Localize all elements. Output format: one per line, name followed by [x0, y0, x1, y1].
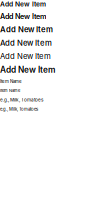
- staticText: Item Name: [0, 79, 22, 84]
- staticText: e.g., Milk, Tomatoes: [0, 97, 43, 103]
- staticText: e.g., Milk, Tomatoes: [0, 107, 38, 112]
- staticText: Add New Item: [0, 38, 52, 47]
- staticText: Add New Item: [0, 25, 53, 34]
- staticText: Add New Item: [0, 12, 46, 21]
- staticText: Add New Item: [0, 51, 51, 61]
- staticText: Add New Item: [0, 65, 55, 75]
- staticText: Add New Item: [0, 0, 46, 8]
- staticText: Item Name: [0, 88, 20, 93]
